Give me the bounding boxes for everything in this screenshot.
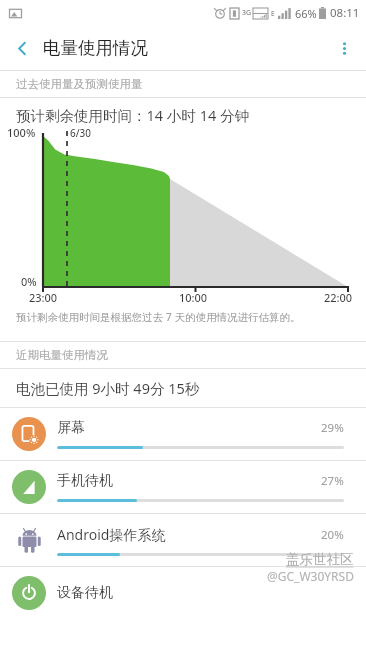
staticText: 100% <box>7 125 36 140</box>
staticText: Android操作系统 <box>57 525 321 544</box>
staticText: 29% <box>321 420 344 436</box>
staticText: @GC_W30YRSD <box>267 568 354 584</box>
staticText: 手机待机 <box>57 472 321 490</box>
staticText: 预计剩余使用时间：14 小时 14 分钟 <box>16 105 249 125</box>
button[interactable]: 手机待机 <box>0 461 366 513</box>
staticText: 10:00 <box>179 290 208 305</box>
button[interactable]: Back <box>0 26 44 70</box>
staticText: 近期电量使用情况 <box>16 348 108 362</box>
staticText: 20% <box>321 527 344 543</box>
staticText: 08:11 <box>330 5 360 21</box>
button[interactable]: More options <box>322 26 366 70</box>
staticText: 22:00 <box>324 290 353 305</box>
staticText: 电量使用情况 <box>43 37 148 59</box>
button[interactable]: 设备待机 <box>0 567 366 619</box>
button[interactable]: Android操作系统 <box>0 514 366 566</box>
staticText: 屏幕 <box>57 419 321 437</box>
staticText: 设备待机 <box>57 584 344 602</box>
staticText: E <box>271 9 275 18</box>
staticText: 预计剩余使用时间是根据您过去 7 天的使用情况进行估算的。 <box>16 310 301 324</box>
staticText: 0% <box>21 274 37 289</box>
staticText: 3G <box>242 8 252 18</box>
staticText: 23:00 <box>29 290 58 305</box>
staticText: 66% <box>295 6 317 21</box>
staticText: 6/30 <box>70 126 92 140</box>
button[interactable]: 屏幕 <box>0 408 366 460</box>
staticText: 27% <box>321 473 344 489</box>
staticText: 过去使用量及预测使用量 <box>16 77 143 91</box>
staticText: 电池已使用 9小时 49分 15秒 <box>16 378 200 398</box>
staticText: 盖乐世社区 <box>286 551 354 568</box>
